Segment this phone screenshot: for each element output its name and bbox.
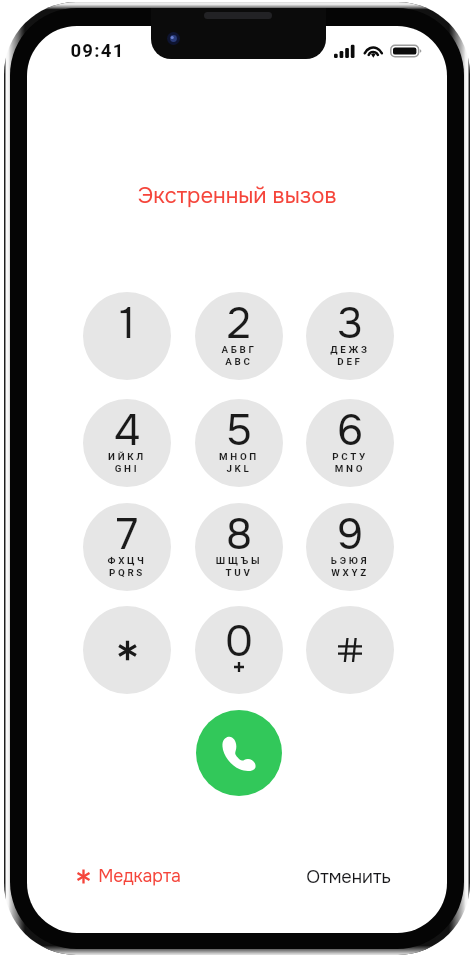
staticText: 7	[83, 508, 171, 562]
staticText: 09:41	[70, 40, 125, 62]
button[interactable]: Медкарта	[74, 863, 181, 889]
button[interactable]: 2	[195, 292, 283, 380]
staticText: 9	[306, 508, 394, 562]
button[interactable]: 9	[306, 503, 394, 591]
button[interactable]: 6	[306, 399, 394, 487]
button[interactable]	[306, 606, 394, 694]
button[interactable]: 0	[195, 606, 283, 694]
staticText: ABC	[195, 356, 283, 367]
staticText: ЬЭЮЯ	[306, 555, 394, 566]
staticText: 4	[83, 404, 171, 458]
staticText: ДЕЖЗ	[306, 344, 394, 355]
staticText: РСТУ	[306, 451, 394, 462]
button[interactable]: Отменить	[306, 863, 391, 889]
staticText: Медкарта	[98, 865, 181, 887]
staticText: 3	[306, 297, 394, 351]
staticText: 0	[195, 615, 283, 669]
button[interactable]: Call	[196, 710, 282, 796]
staticText: TUV	[195, 567, 283, 578]
staticText: ФХЦЧ	[83, 555, 171, 566]
button[interactable]: 7	[83, 503, 171, 591]
button[interactable]: 1	[83, 292, 171, 380]
button[interactable]	[83, 606, 171, 694]
button[interactable]: 5	[195, 399, 283, 487]
staticText: ИЙКЛ	[83, 451, 171, 462]
staticText: DEF	[306, 356, 394, 367]
staticText: Отменить	[306, 865, 391, 888]
button[interactable]: 3	[306, 292, 394, 380]
staticText: Экстренный вызов	[27, 181, 447, 209]
staticText: JKL	[195, 463, 283, 474]
staticText: 5	[195, 404, 283, 458]
staticText: WXYZ	[306, 567, 394, 578]
staticText: GHI	[83, 463, 171, 474]
staticText: ШЩЪЫ	[195, 555, 283, 566]
staticText: 6	[306, 404, 394, 458]
staticText: АБВГ	[195, 344, 283, 355]
staticText: МНОП	[195, 451, 283, 462]
staticText: 2	[195, 297, 283, 351]
button[interactable]: 4	[83, 399, 171, 487]
staticText: PQRS	[83, 567, 171, 578]
staticText: MNO	[306, 463, 394, 474]
staticText: 8	[195, 508, 283, 562]
button[interactable]: 8	[195, 503, 283, 591]
staticText: 1	[83, 297, 171, 351]
